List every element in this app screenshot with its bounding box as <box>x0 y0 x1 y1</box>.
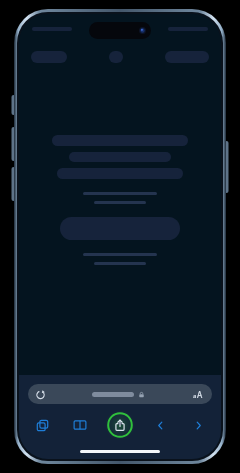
staticText: A <box>197 389 203 400</box>
button[interactable]: Share <box>105 410 135 440</box>
staticText: a <box>193 392 197 400</box>
button[interactable]: Back <box>149 414 171 436</box>
button[interactable]: Reload <box>28 384 212 404</box>
button[interactable]: Page settings <box>191 389 205 400</box>
button[interactable]: Forward <box>187 414 209 436</box>
button[interactable]: Reload <box>35 389 46 400</box>
button[interactable]: Tabs <box>31 414 53 436</box>
button[interactable]: Bookmarks <box>69 414 91 436</box>
